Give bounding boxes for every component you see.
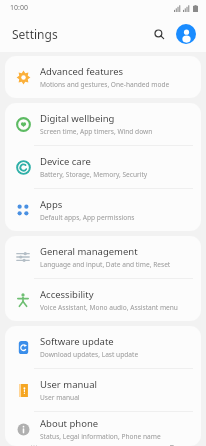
button[interactable]: Apps xyxy=(5,189,201,231)
staticText: Default apps, App permissions xyxy=(40,213,135,222)
staticText: Battery, Storage, Memory, Security xyxy=(40,170,148,179)
staticText: Status, Legal information, Phone name xyxy=(40,432,161,441)
staticText: Digital wellbeing xyxy=(40,112,115,125)
button[interactable]: Account xyxy=(176,24,196,44)
button[interactable]: Advanced features xyxy=(5,56,201,98)
staticText: Accessibility xyxy=(40,288,94,301)
button[interactable]: User manual xyxy=(5,369,201,411)
staticText: Software update xyxy=(40,335,114,348)
staticText: Download updates, Last update xyxy=(40,350,139,359)
staticText: Apps xyxy=(40,198,63,211)
staticText: User manual xyxy=(40,393,80,402)
staticText: User manual xyxy=(40,378,97,391)
staticText: Language and input, Date and time, Reset xyxy=(40,260,171,269)
button[interactable]: Digital wellbeing xyxy=(5,103,201,145)
button[interactable]: About phone xyxy=(5,412,201,446)
staticText: 10:00 xyxy=(10,3,28,13)
button[interactable]: Device care xyxy=(5,146,201,188)
staticText: Voice Assistant, Mono audio, Assistant m… xyxy=(40,303,178,312)
staticText: Settings xyxy=(12,26,58,42)
staticText: Screen time, App timers, Wind down xyxy=(40,127,153,136)
staticText: General management xyxy=(40,245,138,258)
button[interactable]: General management xyxy=(5,236,201,278)
staticText: Advanced features xyxy=(40,65,124,78)
staticText: Motions and gestures, One-handed mode xyxy=(40,80,170,89)
button[interactable]: Search xyxy=(148,23,170,45)
button[interactable]: Accessibility xyxy=(5,279,201,321)
staticText: Device care xyxy=(40,155,91,168)
staticText: About phone xyxy=(40,417,99,430)
button[interactable]: Software update xyxy=(5,326,201,368)
